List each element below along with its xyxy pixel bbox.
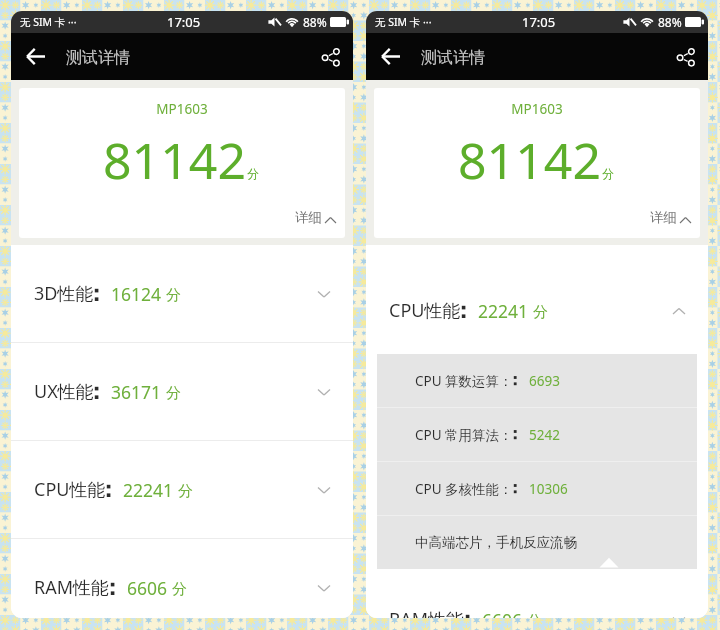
staticText: 6606 (127, 576, 168, 600)
button[interactable]: Share (664, 33, 708, 80)
staticText: 中高端芯片，手机反应流畅 (415, 534, 577, 551)
staticText: 分 (602, 166, 614, 181)
staticText: 分 (247, 166, 259, 181)
staticText: 分 (162, 382, 181, 402)
staticText: CPU 算数运算： (415, 372, 513, 390)
staticText: 详细 (650, 209, 677, 226)
staticText: 分 (162, 284, 181, 304)
staticText: 10306 (529, 480, 568, 498)
button[interactable]: UX性能 (11, 343, 353, 440)
staticText: CPU性能 (34, 477, 106, 502)
button[interactable]: Back (366, 33, 414, 80)
staticText: 5242 (529, 426, 560, 444)
button[interactable]: Share (309, 33, 353, 80)
staticText: 81142 (103, 126, 246, 194)
staticText: 无 SIM 卡 ··· (20, 15, 77, 29)
staticText: 6693 (529, 372, 560, 390)
staticText: CPU 常用算法： (415, 426, 513, 444)
button[interactable]: CPU 算数运算： (377, 354, 697, 407)
button[interactable]: 详细 (374, 209, 700, 226)
button[interactable]: RAM性能 (366, 571, 708, 618)
button[interactable]: Back (11, 33, 59, 80)
staticText: 测试详情 (66, 48, 130, 68)
staticText: 无 SIM 卡 ··· (375, 15, 432, 29)
button[interactable]: CPU性能 (11, 441, 353, 538)
staticText: 6606 (482, 608, 523, 618)
button[interactable]: CPU 常用算法： (377, 408, 697, 461)
staticText: 88% (658, 14, 682, 30)
staticText: 88% (303, 14, 327, 30)
button[interactable]: 中高端芯片，手机反应流畅 (377, 516, 697, 569)
staticText: 22241 (478, 299, 529, 323)
staticText: 22241 (123, 478, 174, 502)
button[interactable]: CPU 多核性能： (377, 462, 697, 515)
staticText: CPU性能 (389, 298, 461, 323)
staticText: 36171 (111, 380, 162, 404)
button[interactable]: 3D性能 (11, 245, 353, 342)
staticText: 81142 (458, 126, 601, 194)
staticText: 17:05 (167, 13, 201, 31)
staticText: 详细 (295, 209, 322, 226)
staticText: 分 (168, 578, 187, 598)
staticText: RAM性能 (34, 575, 110, 600)
staticText: 17:05 (522, 13, 556, 31)
staticText: 分 (523, 610, 542, 618)
staticText: 测试详情 (421, 48, 485, 68)
staticText: CPU 多核性能： (415, 480, 513, 498)
staticText: 分 (174, 480, 193, 500)
staticText: MP1603 (374, 100, 700, 118)
staticText: 3D性能 (34, 281, 94, 306)
staticText: RAM性能 (389, 607, 465, 618)
button[interactable]: CPU性能 (366, 245, 708, 354)
button[interactable]: RAM性能 (11, 539, 353, 618)
staticText: 16124 (111, 282, 162, 306)
staticText: 分 (529, 301, 548, 321)
button[interactable]: 详细 (19, 209, 345, 226)
staticText: MP1603 (19, 100, 345, 118)
staticText: UX性能 (34, 379, 94, 404)
